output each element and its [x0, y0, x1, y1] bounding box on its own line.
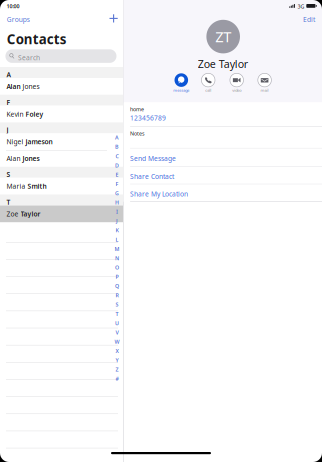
staticText: V	[115, 329, 118, 336]
staticText: F	[7, 98, 11, 107]
staticText: Jones	[23, 154, 40, 163]
staticText: Q	[115, 282, 119, 289]
staticText: Zoe	[7, 209, 21, 218]
button[interactable]: Send Message	[124, 148, 322, 167]
staticText: Foley	[26, 110, 44, 118]
staticText: E	[115, 171, 118, 178]
button[interactable]: message	[168, 73, 194, 94]
staticText: call	[205, 87, 211, 93]
staticText: O	[115, 264, 119, 271]
staticText: R	[115, 292, 118, 299]
button[interactable]: Add contact	[108, 12, 120, 24]
staticText: home	[130, 106, 144, 113]
staticText: C	[115, 152, 118, 160]
staticText: #	[115, 375, 118, 382]
staticText: Send Message	[130, 154, 176, 163]
button[interactable]: video	[224, 73, 250, 94]
staticText: K	[115, 227, 118, 234]
staticText: A	[7, 70, 11, 79]
staticText: 123456789	[130, 114, 166, 122]
button[interactable]: call	[195, 73, 221, 94]
staticText: Contacts	[7, 30, 67, 48]
staticText: X	[115, 347, 118, 354]
staticText: Jameson	[26, 137, 53, 146]
staticText: G	[115, 190, 119, 197]
staticText: Share Contact	[130, 172, 174, 181]
staticText: Share My Location	[130, 189, 188, 198]
staticText: H	[115, 199, 119, 206]
button[interactable]: mail	[252, 73, 278, 94]
staticText: J	[7, 126, 9, 134]
button[interactable]: Search	[5, 49, 116, 63]
staticText: S	[115, 301, 118, 308]
staticText: Edit	[303, 15, 315, 24]
staticText: Maria	[7, 182, 28, 191]
staticText: 10:00	[6, 3, 19, 10]
staticText: Smith	[28, 182, 47, 191]
button[interactable]: Maria	[0, 178, 123, 194]
staticText: N	[115, 255, 119, 262]
staticText: Jones	[23, 82, 40, 91]
staticText: D	[115, 162, 119, 169]
button[interactable]: Share My Location	[124, 184, 322, 202]
staticText: Z	[115, 366, 118, 373]
staticText: Nigel	[7, 137, 26, 146]
staticText: T	[7, 198, 11, 207]
button[interactable]: Share Contact	[124, 167, 322, 184]
button[interactable]: Groups	[7, 15, 39, 23]
staticText: W	[114, 338, 119, 345]
staticText: U	[115, 320, 119, 327]
staticText: Alan	[7, 82, 23, 91]
staticText: Alan	[7, 154, 23, 163]
staticText: A	[115, 134, 119, 141]
staticText: S	[7, 170, 11, 179]
button[interactable]: Kevin	[0, 106, 123, 122]
staticText: Zoe Taylor	[198, 57, 248, 71]
staticText: L	[115, 236, 118, 243]
button[interactable]: Edit	[298, 15, 315, 23]
button[interactable]: Alan	[0, 150, 123, 167]
button[interactable]: Alan	[0, 78, 123, 95]
staticText: Search	[18, 53, 40, 62]
staticText: Notes	[130, 130, 145, 137]
staticText: T	[115, 310, 118, 317]
staticText: Kevin	[7, 110, 26, 118]
staticText: Taylor	[21, 209, 41, 218]
staticText: Y	[115, 357, 118, 364]
staticText: ZT	[215, 27, 231, 46]
staticText: I	[116, 208, 118, 215]
staticText: message	[173, 87, 189, 93]
staticText: Groups	[7, 15, 30, 24]
staticText: M	[114, 245, 119, 252]
staticText: F	[115, 180, 118, 187]
button[interactable]: Nigel	[0, 133, 123, 150]
staticText: 3G	[298, 3, 305, 10]
staticText: J	[116, 217, 118, 225]
staticText: mail	[261, 87, 269, 93]
staticText: video	[232, 87, 241, 93]
button[interactable]: Zoe	[0, 205, 123, 222]
staticText: P	[115, 273, 118, 280]
staticText: B	[115, 143, 119, 150]
